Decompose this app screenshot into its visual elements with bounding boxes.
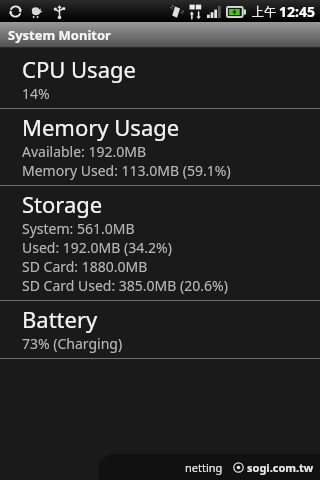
staticText: netting <box>185 460 223 475</box>
button[interactable]: Battery <box>0 301 320 358</box>
button[interactable]: CPU Usage <box>0 48 320 108</box>
staticText: System: 561.0MB <box>22 219 135 238</box>
button[interactable]: Storage <box>0 186 320 300</box>
staticText: Storage <box>22 189 103 219</box>
staticText: SD Card Used: 385.0MB (20.6%) <box>22 276 228 295</box>
staticText: System Monitor <box>8 26 111 44</box>
staticText: Battery <box>22 304 98 334</box>
staticText: Available: 192.0MB <box>22 142 147 161</box>
staticText: Memory Used: 113.0MB (59.1%) <box>22 161 231 180</box>
staticText: Used: 192.0MB (34.2%) <box>22 238 172 257</box>
staticText: 73% (Charging) <box>22 334 123 353</box>
staticText: 上午 <box>252 4 276 19</box>
staticText: SD Card: 1880.0MB <box>22 257 148 276</box>
staticText: CPU Usage <box>22 54 136 84</box>
staticText: 14% <box>22 84 50 103</box>
staticText: Memory Usage <box>22 112 180 142</box>
staticText: 12:45 <box>279 2 315 21</box>
button[interactable]: Memory Usage <box>0 109 320 185</box>
staticText: sogi.com.tw <box>247 460 314 475</box>
